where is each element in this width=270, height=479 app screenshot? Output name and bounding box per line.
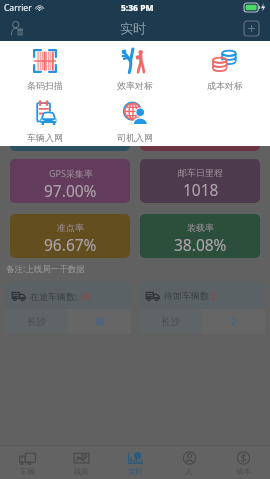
button[interactable]: 成本对标: [180, 41, 270, 93]
button[interactable]: 司机入网: [90, 93, 180, 145]
staticText: 线路: [74, 467, 89, 476]
staticText: 效率对标: [117, 80, 153, 91]
staticText: 长沙: [27, 316, 46, 328]
staticText: 成本: [236, 467, 251, 476]
staticText: 实时: [128, 467, 143, 476]
staticText: 司机入网: [117, 132, 153, 143]
staticText: 车辆: [20, 467, 35, 476]
button[interactable]: 成本: [216, 446, 270, 479]
button[interactable]: 条码扫描: [0, 41, 90, 93]
staticText: GPS采集率: [49, 167, 93, 179]
staticText: 实时: [120, 20, 146, 36]
staticText: 38: [94, 315, 105, 328]
staticText: Carrier: [4, 2, 32, 14]
staticText: 条码扫描: [27, 80, 63, 91]
button[interactable]: 装载率: [140, 214, 260, 258]
staticText: 38: [80, 290, 91, 302]
button[interactable]: 人: [162, 446, 216, 479]
button[interactable]: 待卸车辆数: [139, 282, 265, 334]
staticText: 1018: [183, 179, 219, 200]
button[interactable]: 线路: [54, 446, 108, 479]
staticText: 96.67%: [44, 234, 97, 255]
staticText: 成本对标: [207, 80, 243, 91]
button[interactable]: 效率对标: [90, 41, 180, 93]
staticText: 2: [231, 315, 237, 328]
button[interactable]: Add: [232, 15, 270, 41]
staticText: 5:36 PM: [121, 2, 154, 14]
staticText: 长沙: [161, 316, 180, 328]
button[interactable]: 在途车辆数:: [5, 282, 131, 334]
staticText: 装载率: [187, 222, 214, 233]
button[interactable]: 车辆: [0, 446, 54, 479]
button[interactable]: 实时: [108, 446, 162, 479]
staticText: 邮车日里程: [178, 167, 223, 178]
button[interactable]: Account: [0, 15, 34, 41]
staticText: 2: [211, 290, 217, 302]
staticText: 38.08%: [174, 234, 227, 255]
staticText: 人: [185, 467, 193, 476]
staticText: 97.00%: [44, 180, 97, 201]
button[interactable]: 邮车日里程: [140, 159, 260, 203]
button[interactable]: 车辆入网: [0, 93, 90, 145]
button[interactable]: GPS采集率: [10, 159, 130, 203]
staticText: 准点率: [57, 222, 84, 233]
staticText: 待卸车辆数: [164, 290, 209, 301]
staticText: 在途车辆数:: [30, 290, 78, 302]
button[interactable]: 准点率: [10, 214, 130, 258]
staticText: 备注:上线局一干数据: [6, 263, 85, 275]
staticText: 车辆入网: [27, 132, 63, 143]
